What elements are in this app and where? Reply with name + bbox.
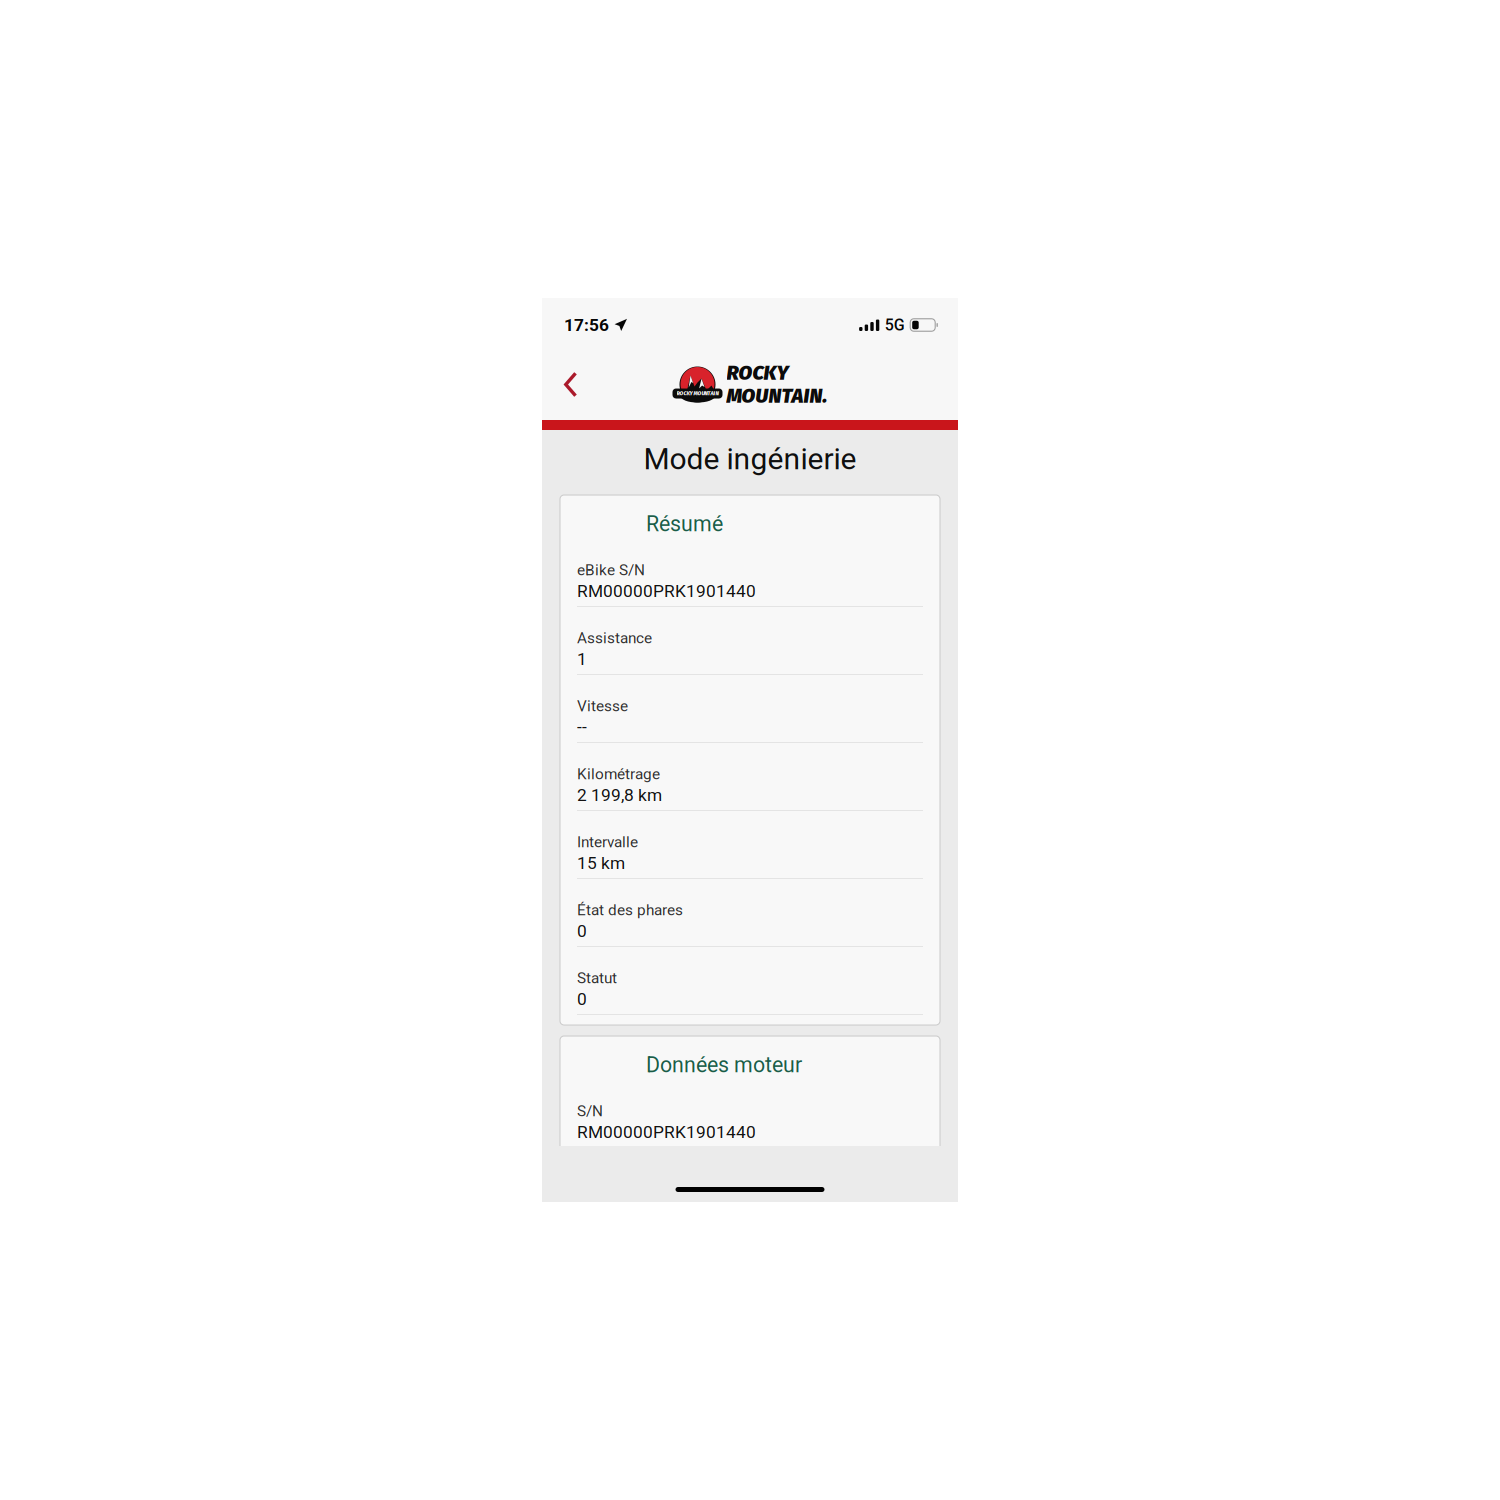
- staticText: --: [577, 717, 587, 737]
- staticText: 5G: [885, 316, 905, 334]
- staticText: Kilométrage: [577, 765, 660, 783]
- staticText: S/N: [577, 1102, 603, 1120]
- staticText: 0: [577, 989, 587, 1009]
- staticText: 17:56: [564, 315, 609, 335]
- staticText: RM00000PRK1901440: [577, 1122, 756, 1142]
- staticText: 2 199,8 km: [577, 785, 662, 805]
- button[interactable]: Back: [542, 354, 593, 414]
- staticText: eBike S/N: [577, 561, 645, 579]
- staticText: MOUNTAIN.: [726, 384, 827, 408]
- staticText: Résumé: [646, 511, 723, 536]
- staticText: ROCKY MOUNTAIN: [676, 390, 718, 397]
- staticText: Vitesse: [577, 697, 628, 715]
- staticText: Données moteur: [646, 1052, 802, 1077]
- staticText: Assistance: [577, 629, 652, 647]
- staticText: RM00000PRK1901440: [577, 581, 756, 601]
- staticText: État des phares: [577, 901, 683, 919]
- staticText: 36 V: [577, 1190, 612, 1210]
- staticText: 1: [577, 649, 587, 669]
- staticText: Statut: [577, 969, 617, 987]
- staticText: 15 km: [577, 853, 625, 873]
- staticText: Intervalle: [577, 833, 638, 851]
- staticText: Mode ingénierie: [643, 441, 856, 477]
- staticText: 0: [577, 921, 587, 941]
- staticText: ROCKY: [726, 361, 788, 385]
